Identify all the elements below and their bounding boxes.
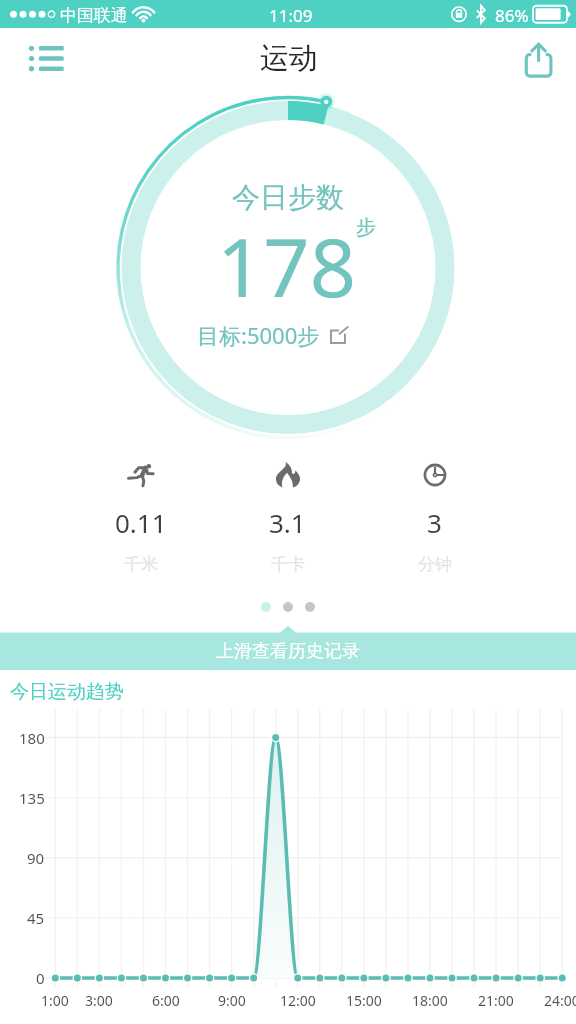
staticText: 12:00	[280, 991, 316, 1010]
staticText: 86%	[495, 4, 529, 27]
staticText: 分钟	[418, 554, 452, 575]
button[interactable]: 目标:5000步	[197, 320, 348, 350]
button[interactable]: 3.1	[214, 452, 361, 575]
button[interactable]: 上滑查看历史记录	[0, 624, 576, 670]
staticText: 1:00	[41, 991, 69, 1010]
staticText: 180	[19, 728, 45, 748]
staticText: 中国联通	[60, 5, 128, 26]
staticText: 上滑查看历史记录	[216, 640, 360, 663]
staticText: 0.11	[115, 505, 167, 540]
staticText: 135	[19, 788, 45, 808]
staticText: 6:00	[152, 991, 180, 1010]
button[interactable]: Menu	[14, 33, 64, 83]
button[interactable]: 0.11	[68, 452, 214, 575]
staticText: 千米	[124, 554, 158, 575]
button[interactable]: 3	[361, 452, 508, 575]
staticText: 千卡	[271, 554, 305, 575]
staticText: 3:00	[85, 991, 113, 1010]
staticText: 18:00	[412, 991, 448, 1010]
staticText: 21:00	[478, 991, 514, 1010]
staticText: 3.1	[269, 505, 306, 540]
staticText: 步	[356, 215, 376, 240]
staticText: 45	[27, 908, 45, 928]
staticText: 今日运动趋势	[10, 680, 124, 704]
staticText: 9:00	[218, 991, 246, 1010]
staticText: 24:00	[544, 991, 576, 1010]
staticText: 3	[427, 505, 442, 540]
staticText: 运动	[260, 40, 318, 77]
staticText: 11:09	[269, 4, 313, 27]
staticText: 目标:5000步	[197, 320, 320, 350]
staticText: 178	[217, 210, 356, 320]
staticText: 今日步数	[232, 180, 344, 215]
staticText: 90	[27, 848, 45, 868]
staticText: 0	[36, 968, 45, 988]
staticText: 15:00	[346, 991, 382, 1010]
button[interactable]: Share	[516, 32, 568, 84]
